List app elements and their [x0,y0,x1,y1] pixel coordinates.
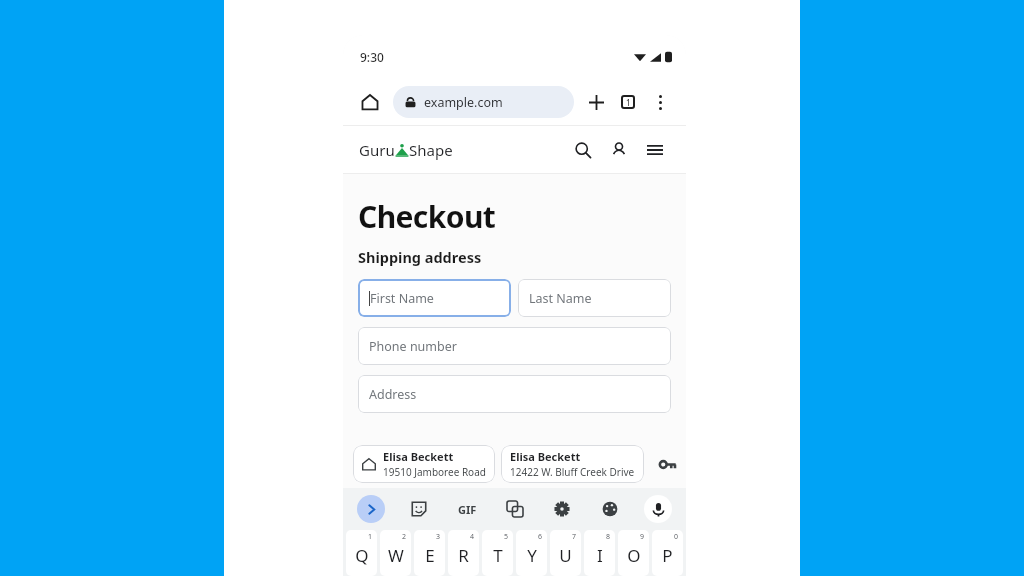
staticText: 3 [436,532,441,542]
staticText: Shape [409,140,453,160]
staticText: Elisa Beckett [510,449,581,464]
button[interactable]: Expand [357,495,385,523]
button[interactable]: New tab [582,88,610,116]
button[interactable]: Passwords [654,451,680,477]
button[interactable]: 7 [550,530,581,576]
staticText: Shipping address [358,247,482,267]
button[interactable]: Address [358,375,671,413]
staticText: Elisa Beckett [383,449,454,464]
button[interactable]: Home [355,87,385,117]
button[interactable]: Settings [548,495,576,523]
button[interactable]: 4 [448,530,479,576]
staticText: 9:30 [360,49,384,65]
staticText: 19510 Jamboree Road [383,465,486,479]
button[interactable]: 1 [346,530,377,576]
staticText: First Name [370,290,434,307]
staticText: I [597,544,603,567]
staticText: 12422 W. Bluff Creek Drive [510,465,635,479]
staticText: R [458,544,469,567]
staticText: Last Name [529,290,592,307]
button[interactable]: Search [568,135,598,165]
staticText: 7 [572,532,577,542]
button[interactable]: 3 [414,530,445,576]
button[interactable]: GIF [453,495,481,523]
staticText: 0 [674,532,679,542]
button[interactable]: Elisa Beckett [353,445,495,483]
staticText: 2 [402,532,407,542]
staticText: U [559,544,572,567]
staticText: E [425,544,435,567]
button[interactable]: Themes [596,495,624,523]
staticText: 1 [368,532,373,542]
staticText: 4 [470,532,475,542]
button[interactable]: 9 [618,530,649,576]
staticText: W [388,544,404,567]
button[interactable]: More options [646,88,674,116]
button[interactable]: Elisa Beckett [501,445,644,483]
button[interactable]: example.com [393,86,574,118]
staticText: Y [527,544,537,567]
staticText: T [493,544,503,567]
button[interactable]: Translate [501,495,529,523]
button[interactable]: Guru [359,140,453,160]
button[interactable]: Phone number [358,327,671,365]
staticText: 5 [504,532,509,542]
staticText: example.com [424,94,503,111]
button[interactable]: Voice input [644,495,672,523]
staticText: 8 [606,532,611,542]
staticText: 6 [538,532,543,542]
staticText: 1 [626,97,631,108]
staticText: Guru [359,140,395,160]
button[interactable]: 2 [380,530,411,576]
staticText: Phone number [369,338,457,355]
staticText: P [662,544,673,567]
button[interactable]: Menu [640,135,670,165]
button[interactable]: 5 [482,530,513,576]
staticText: Checkout [358,196,496,237]
button[interactable]: Last Name [518,279,671,317]
button[interactable]: Stickers [405,495,433,523]
button[interactable]: Tabs [614,88,642,116]
staticText: 9 [640,532,645,542]
button[interactable]: 8 [584,530,615,576]
staticText: O [627,544,641,567]
button[interactable]: 6 [516,530,547,576]
staticText: GIF [458,502,477,517]
staticText: Q [355,544,369,567]
button[interactable]: First Name [358,279,511,317]
staticText: Address [369,386,417,403]
button[interactable]: 0 [652,530,683,576]
button[interactable]: Account [604,135,634,165]
